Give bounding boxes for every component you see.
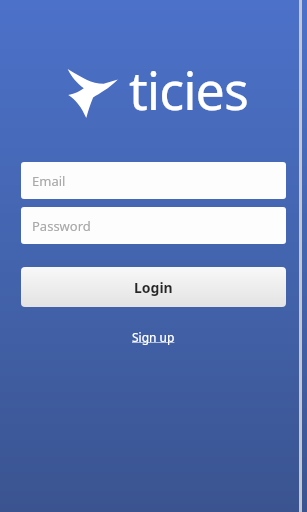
button[interactable]: Login (21, 267, 286, 307)
staticText: Login (134, 278, 173, 297)
staticText: Email (32, 172, 66, 190)
staticText: Sign up (132, 329, 175, 345)
button[interactable]: Password (21, 207, 286, 244)
staticText: ticies (129, 54, 248, 125)
button[interactable]: Email (21, 162, 286, 199)
other: Ticies logo (59, 59, 121, 121)
staticText: Password (32, 217, 91, 235)
button[interactable]: Sign up (126, 326, 181, 348)
